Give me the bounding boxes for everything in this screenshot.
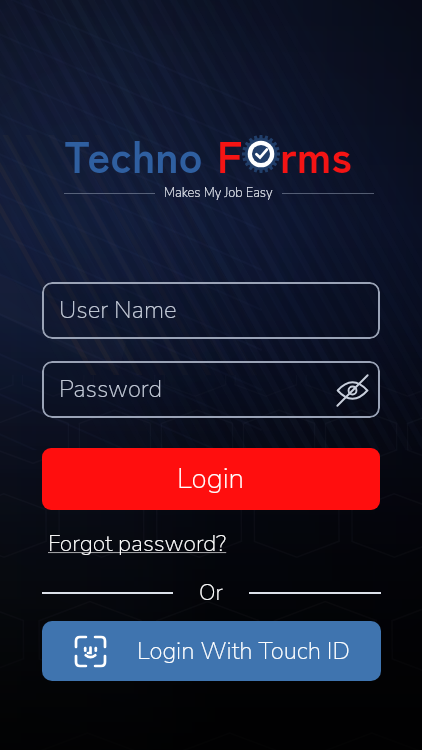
button[interactable]: User Name (42, 282, 380, 339)
button[interactable]: Forgot password? (48, 528, 227, 559)
staticText: Or (199, 578, 223, 608)
button[interactable]: Login With Touch ID (42, 621, 381, 681)
staticText: F (217, 122, 242, 186)
button[interactable]: Show password (334, 372, 370, 408)
staticText: Login With Touch ID (137, 635, 350, 668)
staticText: rms (280, 122, 352, 186)
staticText: User Name (59, 294, 370, 327)
button[interactable]: Password (42, 361, 380, 418)
staticText: Techno (64, 122, 203, 186)
staticText: Login (177, 460, 245, 498)
button[interactable]: Login (42, 448, 380, 510)
staticText: Password (59, 373, 334, 406)
staticText: Makes My Job Easy (164, 184, 273, 202)
